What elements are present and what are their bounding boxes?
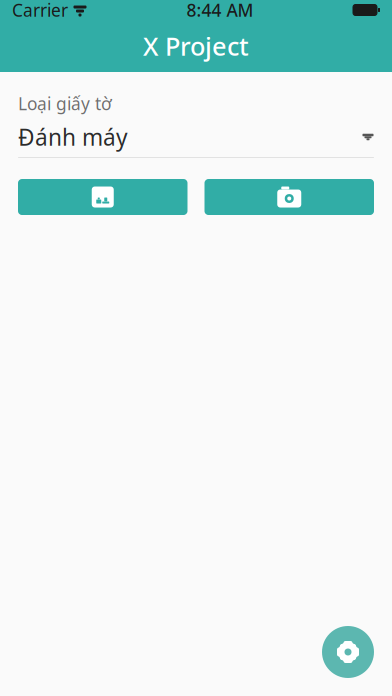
- staticText: X Project: [143, 29, 249, 63]
- button[interactable]: Chụp ảnh: [204, 179, 374, 215]
- button[interactable]: Đánh máy: [18, 124, 374, 150]
- button[interactable]: Chọn ảnh từ thư viện: [18, 179, 187, 215]
- button[interactable]: Cài đặt: [322, 626, 374, 678]
- staticText: Carrier: [12, 0, 68, 21]
- staticText: 8:44 AM: [186, 0, 253, 21]
- staticText: Đánh máy: [18, 122, 128, 152]
- staticText: Loại giấy tờ: [18, 92, 112, 115]
